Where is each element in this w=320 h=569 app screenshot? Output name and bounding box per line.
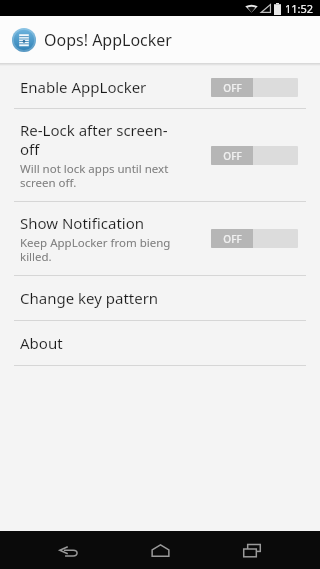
button[interactable]: About xyxy=(0,321,320,365)
staticText: OFF xyxy=(223,81,242,95)
staticText: Change key pattern xyxy=(20,288,159,308)
button[interactable]: Change key pattern xyxy=(0,276,320,320)
staticText: Will not lock apps until next screen off… xyxy=(20,161,201,190)
button[interactable]: Toggle, off xyxy=(211,146,298,165)
staticText: Keep AppLocker from bieng killed. xyxy=(20,235,201,264)
button[interactable]: Re-Lock after screen- off xyxy=(0,109,320,201)
staticText: 11:52 xyxy=(285,1,314,16)
button[interactable]: Toggle, off xyxy=(211,78,298,97)
staticText: Oops! AppLocker xyxy=(44,29,172,51)
staticText: OFF xyxy=(223,149,242,163)
button[interactable]: Recent apps xyxy=(228,531,276,569)
button[interactable]: Toggle, off xyxy=(211,229,298,248)
staticText: Enable AppLocker xyxy=(20,77,147,97)
button[interactable]: Show Notification xyxy=(0,202,320,275)
staticText: OFF xyxy=(223,232,242,246)
button[interactable]: Back xyxy=(44,531,92,569)
button[interactable]: Home xyxy=(136,531,184,569)
staticText: Show Notification xyxy=(20,213,145,233)
staticText: About xyxy=(20,333,63,353)
button[interactable]: Enable AppLocker xyxy=(0,66,320,108)
staticText: Re-Lock after screen- off xyxy=(20,120,168,159)
